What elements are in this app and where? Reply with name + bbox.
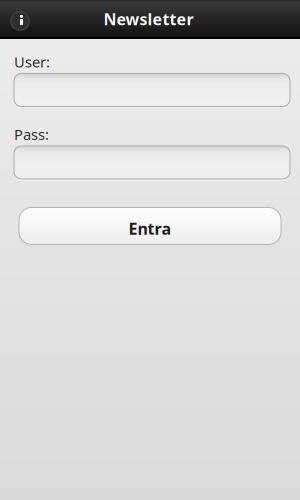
button[interactable]: Info — [0, 1, 40, 39]
button[interactable]: Entra — [19, 210, 281, 247]
button[interactable]: Password — [14, 146, 290, 179]
staticText: Newsletter — [103, 8, 193, 30]
button[interactable]: User — [14, 73, 290, 106]
staticText: User: — [14, 52, 50, 71]
staticText: Entra — [128, 218, 171, 239]
staticText: Pass: — [14, 124, 49, 144]
